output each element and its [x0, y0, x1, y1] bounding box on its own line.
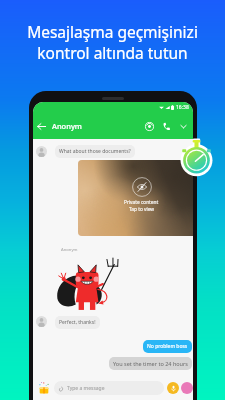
staticText: Private content: [124, 199, 159, 206]
staticText: Type a message: [67, 385, 105, 392]
button[interactable]: Back: [33, 118, 50, 135]
staticText: Anonym: [52, 121, 82, 131]
button[interactable]: Private content, tap to view: [78, 160, 193, 236]
button[interactable]: Stickers: [37, 381, 51, 395]
staticText: Mesajlaşma geçmişinizi: [27, 21, 198, 42]
staticText: kontrol altında tutun: [37, 42, 188, 63]
button[interactable]: You set the timer to 24 hours: [109, 357, 192, 370]
button[interactable]: Call: [158, 118, 175, 135]
staticText: No problem boss: [147, 343, 188, 350]
staticText: Anonym: [61, 247, 78, 253]
button[interactable]: Type a message: [54, 381, 164, 395]
staticText: Tap to view: [129, 206, 155, 213]
button[interactable]: Camera: [181, 382, 193, 394]
button[interactable]: No problem boss: [143, 340, 192, 353]
staticText: 16:38: [176, 104, 189, 111]
button[interactable]: Voice message: [167, 382, 179, 394]
staticText: Perfect, thanks!: [59, 319, 96, 326]
button[interactable]: Video call: [141, 118, 158, 135]
button[interactable]: More options: [175, 118, 192, 135]
staticText: What about those documents?: [59, 148, 131, 155]
staticText: You set the timer to 24 hours: [113, 360, 188, 367]
button[interactable]: Perfect, thanks!: [55, 316, 100, 329]
button[interactable]: What about those documents?: [55, 145, 135, 158]
